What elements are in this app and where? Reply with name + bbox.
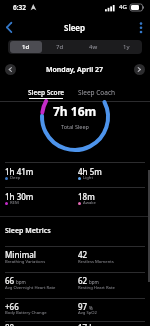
staticText: REM xyxy=(10,200,19,206)
button[interactable] xyxy=(0,17,24,37)
button[interactable] xyxy=(134,64,145,75)
button[interactable]: Awake xyxy=(78,200,96,206)
staticText: 1y xyxy=(123,43,130,51)
staticText: Body Battery Change xyxy=(5,310,47,316)
staticText: Avg SpO2 xyxy=(78,310,98,316)
staticText: Sleep xyxy=(64,22,86,33)
staticText: Minimal xyxy=(5,249,36,260)
staticText: 62 xyxy=(78,275,88,286)
button[interactable]: 7d xyxy=(44,41,76,53)
button[interactable]: 1y xyxy=(110,41,142,53)
button[interactable]: Sleep Score xyxy=(16,84,76,100)
staticText: bpm xyxy=(89,279,99,285)
button[interactable]: 4w xyxy=(77,41,109,53)
staticText: 7d xyxy=(56,43,64,51)
staticText: % xyxy=(89,305,93,311)
staticText: 18m xyxy=(78,191,95,202)
staticText: Resting Heart Rate xyxy=(78,285,115,291)
button[interactable] xyxy=(5,64,16,75)
staticText: 97 xyxy=(78,301,88,312)
staticText: 4h 5m xyxy=(78,166,102,177)
staticText: Sleep Metrics xyxy=(5,226,51,236)
staticText: Sleep Coach xyxy=(78,88,116,97)
button[interactable]: REM xyxy=(5,200,19,206)
staticText: 1h 30m xyxy=(5,191,34,202)
staticText: 4G xyxy=(119,3,127,11)
staticText: Total Sleep xyxy=(61,123,89,130)
staticText: +66 xyxy=(5,301,19,312)
staticText: Light xyxy=(83,175,93,181)
staticText: 7h 16m xyxy=(53,103,97,119)
staticText: 42 xyxy=(78,249,88,260)
staticText: 4w xyxy=(89,43,98,51)
staticText: Deep xyxy=(10,175,21,181)
button[interactable]: Light xyxy=(78,175,93,181)
staticText: bpm xyxy=(16,279,26,285)
staticText: Breathing Variations xyxy=(5,259,46,265)
staticText: 80 - xyxy=(5,322,19,326)
button[interactable]: 1d xyxy=(10,41,42,53)
staticText: Restless Moments xyxy=(78,259,114,265)
staticText: 6:32 xyxy=(13,3,26,12)
staticText: 66 xyxy=(5,275,15,286)
staticText: 1h 41m xyxy=(5,166,34,177)
button[interactable]: Sleep Coach xyxy=(67,84,127,100)
staticText: 1d xyxy=(22,43,30,51)
button[interactable]: Deep xyxy=(5,175,21,181)
staticText: 17 b xyxy=(78,322,95,326)
button[interactable] xyxy=(132,17,150,37)
staticText: Avg Overnight Heart Rate xyxy=(5,285,56,291)
staticText: Awake xyxy=(83,200,96,206)
staticText: Monday, April 27 xyxy=(46,65,104,75)
staticText: Sleep Score xyxy=(28,88,65,97)
